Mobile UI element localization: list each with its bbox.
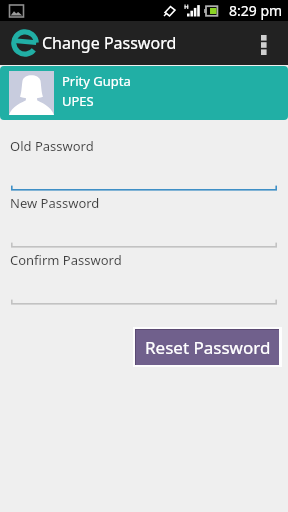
- button[interactable]: [0, 240, 288, 248]
- button[interactable]: [0, 297, 288, 305]
- staticText: Reset Password: [145, 336, 271, 359]
- button[interactable]: Reset Password: [136, 330, 279, 365]
- button[interactable]: App logo: [8, 26, 42, 60]
- staticText: Confirm Password: [10, 251, 122, 269]
- staticText: 8:29 pm: [229, 1, 283, 20]
- staticText: New Password: [10, 194, 100, 212]
- staticText: Old Password: [10, 137, 94, 155]
- button[interactable]: More options: [250, 21, 278, 65]
- button[interactable]: [0, 183, 288, 191]
- staticText: Prity Gupta: [62, 72, 131, 90]
- staticText: Change Password: [42, 32, 177, 54]
- staticText: UPES: [62, 92, 94, 110]
